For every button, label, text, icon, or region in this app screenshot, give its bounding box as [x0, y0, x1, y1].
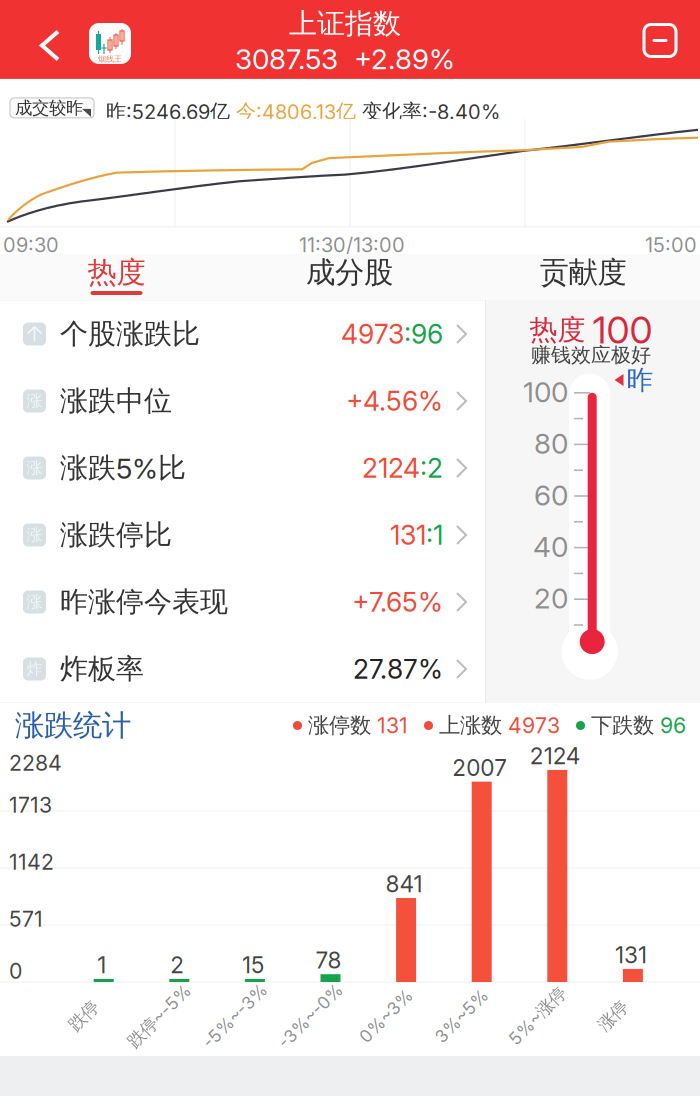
staticText: 4973 [508, 713, 560, 738]
staticText: 1 [97, 951, 106, 979]
staticText: 昨 [626, 363, 653, 397]
staticText: 131 [615, 941, 647, 969]
staticText: 131 [377, 713, 408, 738]
staticText: 热度 [529, 312, 585, 348]
staticText: 2124 [530, 742, 581, 770]
staticText: -3%~-0% [269, 1005, 352, 1026]
staticText: 炸板率 [60, 651, 144, 687]
staticText: 78 [315, 946, 341, 974]
staticText: 15:00 [645, 233, 697, 257]
staticText: 涨 [26, 391, 42, 411]
button[interactable]: 成交较昨 [0, 79, 94, 118]
staticText: :2 [420, 452, 443, 484]
staticText: 涨停数 [302, 712, 377, 739]
button[interactable]: 贡献度 [466, 254, 700, 300]
staticText: 上证指数 [289, 6, 401, 41]
staticText: 涨 [26, 458, 42, 478]
staticText: 0%~3% [353, 1005, 420, 1026]
staticText: 烟线王 [98, 54, 122, 64]
button[interactable]: 涨 [0, 367, 485, 434]
staticText: 5%~涨停 [501, 1005, 574, 1027]
staticText: 涨 [26, 525, 42, 545]
staticText: 涨跌中位 [60, 383, 172, 419]
staticText: 80 [534, 427, 568, 461]
staticText: 下跌数 [585, 712, 660, 739]
staticText: 3%~5% [428, 1005, 495, 1026]
button[interactable]: 涨 [0, 568, 485, 635]
staticText: 变化率:-8.40% [362, 99, 500, 124]
staticText: 60 [534, 478, 568, 512]
staticText: 炸 [26, 659, 42, 679]
staticText: 15 [242, 951, 264, 979]
staticText: 4973 [341, 318, 404, 350]
staticText: 热度 [87, 254, 145, 291]
staticText: 昨:5246.69亿 [106, 99, 236, 124]
staticText: 2124 [362, 452, 420, 484]
button[interactable]: 炸 [0, 635, 485, 702]
staticText: 涨跌停比 [60, 517, 172, 553]
staticText: 0 [9, 958, 22, 984]
staticText: 贡献度 [539, 254, 626, 291]
staticText: 赚钱效应极好 [531, 342, 651, 368]
staticText: 3087.53 +2.89% [235, 42, 455, 76]
staticText: 11:30/13:00 [299, 233, 405, 257]
staticText: :96 [404, 318, 443, 350]
staticText: 跌停 [67, 1005, 101, 1027]
staticText: 40 [533, 530, 568, 564]
staticText: 成分股 [306, 254, 393, 291]
staticText: 昨涨停今表现 [60, 584, 228, 620]
staticText: 2007 [452, 754, 507, 781]
staticText: 100 [523, 375, 568, 409]
staticText: 涨停 [596, 1005, 630, 1027]
staticText: 2 [170, 951, 184, 979]
button[interactable]: 涨 [0, 434, 485, 501]
staticText: 100 [592, 307, 652, 353]
staticText: 1142 [9, 849, 54, 875]
staticText: 20 [534, 581, 568, 615]
staticText: 今:4806.13亿 [236, 99, 362, 124]
staticText: 涨 [26, 592, 42, 612]
staticText: 841 [386, 870, 423, 898]
staticText: 成交较昨 [15, 97, 83, 119]
staticText: 跌停~-5% [119, 1005, 200, 1027]
button[interactable]: 成分股 [233, 254, 466, 300]
button[interactable]: 涨 [0, 501, 485, 568]
staticText: 27.87% [353, 653, 443, 685]
staticText: 2284 [9, 750, 62, 776]
staticText: 131 [390, 519, 426, 551]
staticText: 涨跌5%比 [60, 450, 186, 486]
staticText: 571 [9, 906, 43, 932]
staticText: -5%~-3% [193, 1005, 276, 1026]
staticText: 上涨数 [433, 712, 508, 739]
staticText: 09:30 [3, 233, 59, 257]
button[interactable]: Back [0, 0, 80, 81]
staticText: :1 [426, 519, 443, 551]
button[interactable]: 个股涨跌比 [0, 300, 485, 367]
staticText: +4.56% [346, 385, 443, 417]
staticText: 个股涨跌比 [60, 316, 200, 352]
staticText: 96 [660, 713, 686, 738]
button[interactable]: Minimize [620, 0, 700, 81]
button[interactable]: 热度 [0, 254, 233, 300]
staticText: 1713 [9, 792, 52, 818]
staticText: +7.65% [352, 586, 443, 618]
staticText: 涨跌统计 [15, 707, 131, 744]
